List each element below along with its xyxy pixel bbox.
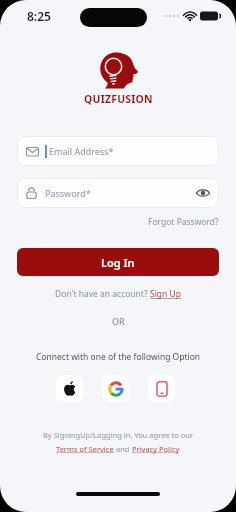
staticText: Don't have an account?: [55, 288, 150, 300]
button[interactable]: [148, 375, 175, 402]
staticText: Password*: [45, 187, 91, 199]
staticText: By SigningUp/Logging in, You agree to ou…: [43, 430, 194, 440]
staticText: Log In: [101, 255, 135, 270]
staticText: OR: [112, 315, 125, 327]
button[interactable]: [56, 375, 83, 402]
staticText: 8:25: [27, 8, 51, 24]
button[interactable]: Privacy Policy: [132, 444, 180, 454]
button[interactable]: Log In: [17, 248, 219, 276]
button[interactable]: Terms of Service: [56, 444, 114, 454]
button[interactable]: Password*: [17, 178, 219, 208]
staticText: and: [114, 444, 132, 454]
button[interactable]: [196, 188, 210, 198]
button[interactable]: Forgot Password?: [148, 216, 219, 228]
button[interactable]: Sign Up: [150, 288, 181, 300]
staticText: Email Address*: [49, 145, 114, 157]
staticText: Connect with one of the following Option: [36, 351, 201, 363]
staticText: QUIZFUSION: [84, 92, 153, 106]
button[interactable]: Email Address*: [17, 136, 219, 166]
button[interactable]: [102, 375, 129, 402]
